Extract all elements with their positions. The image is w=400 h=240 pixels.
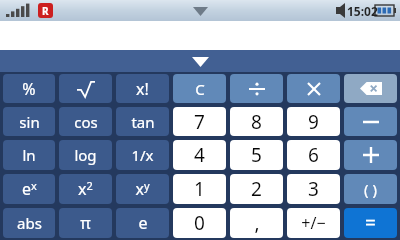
button[interactable]: %: [3, 74, 55, 103]
staticText: tan: [131, 112, 155, 132]
staticText: =: [365, 210, 376, 236]
button[interactable]: divide: [230, 74, 283, 103]
button[interactable]: 5: [230, 140, 283, 170]
button[interactable]: 6: [287, 140, 340, 170]
button[interactable]: C: [173, 74, 226, 103]
staticText: 1: [194, 176, 205, 202]
staticText: R: [42, 4, 49, 18]
staticText: +/−: [301, 212, 326, 234]
staticText: C: [195, 79, 205, 99]
button[interactable]: x: [116, 174, 169, 204]
staticText: 1/x: [131, 145, 154, 165]
button[interactable]: 8: [230, 107, 283, 136]
button[interactable]: Expand: [0, 50, 400, 72]
staticText: log: [74, 145, 97, 165]
button[interactable]: sqrt: [59, 74, 112, 103]
staticText: 5: [251, 142, 262, 168]
button[interactable]: 4: [173, 140, 226, 170]
button[interactable]: x: [59, 174, 112, 204]
button[interactable]: ln: [3, 140, 55, 170]
button[interactable]: ,: [230, 208, 283, 238]
staticText: 2: [251, 176, 262, 202]
staticText: e: [138, 212, 148, 234]
button[interactable]: minus: [344, 107, 397, 136]
button[interactable]: 1: [173, 174, 226, 204]
staticText: 6: [308, 142, 319, 168]
button[interactable]: =: [344, 208, 397, 238]
button[interactable]: x!: [116, 74, 169, 103]
staticText: 8: [251, 109, 262, 135]
staticText: cos: [74, 112, 98, 132]
button[interactable]: e: [3, 174, 55, 204]
staticText: abs: [17, 213, 42, 233]
button[interactable]: +/−: [287, 208, 340, 238]
button[interactable]: e: [116, 208, 169, 238]
button[interactable]: 7: [173, 107, 226, 136]
button[interactable]: 3: [287, 174, 340, 204]
button[interactable]: π: [59, 208, 112, 238]
staticText: sin: [19, 112, 40, 132]
staticText: π: [80, 212, 91, 234]
button[interactable]: log: [59, 140, 112, 170]
staticText: x!: [136, 78, 149, 100]
staticText: x2: [78, 178, 93, 200]
button[interactable]: plus: [344, 140, 397, 170]
staticText: 15:02: [347, 3, 378, 19]
staticText: xy: [135, 178, 150, 200]
button[interactable]: backspace: [344, 74, 397, 103]
button[interactable]: sin: [3, 107, 55, 136]
button[interactable]: 1/x: [116, 140, 169, 170]
staticText: 4: [194, 142, 205, 168]
button[interactable]: 2: [230, 174, 283, 204]
staticText: ln: [22, 145, 36, 165]
button[interactable]: abs: [3, 208, 55, 238]
staticText: 9: [308, 109, 319, 135]
button[interactable]: 0: [173, 208, 226, 238]
button[interactable]: 9: [287, 107, 340, 136]
button[interactable]: cos: [59, 107, 112, 136]
staticText: ex: [22, 178, 37, 200]
button[interactable]: multiply: [287, 74, 340, 103]
staticText: 3: [308, 176, 319, 202]
staticText: ,: [254, 210, 260, 236]
staticText: ( ): [364, 179, 377, 199]
staticText: 7: [194, 109, 205, 135]
staticText: 0: [194, 210, 205, 236]
button[interactable]: tan: [116, 107, 169, 136]
staticText: %: [22, 78, 36, 100]
button[interactable]: ( ): [344, 174, 397, 204]
